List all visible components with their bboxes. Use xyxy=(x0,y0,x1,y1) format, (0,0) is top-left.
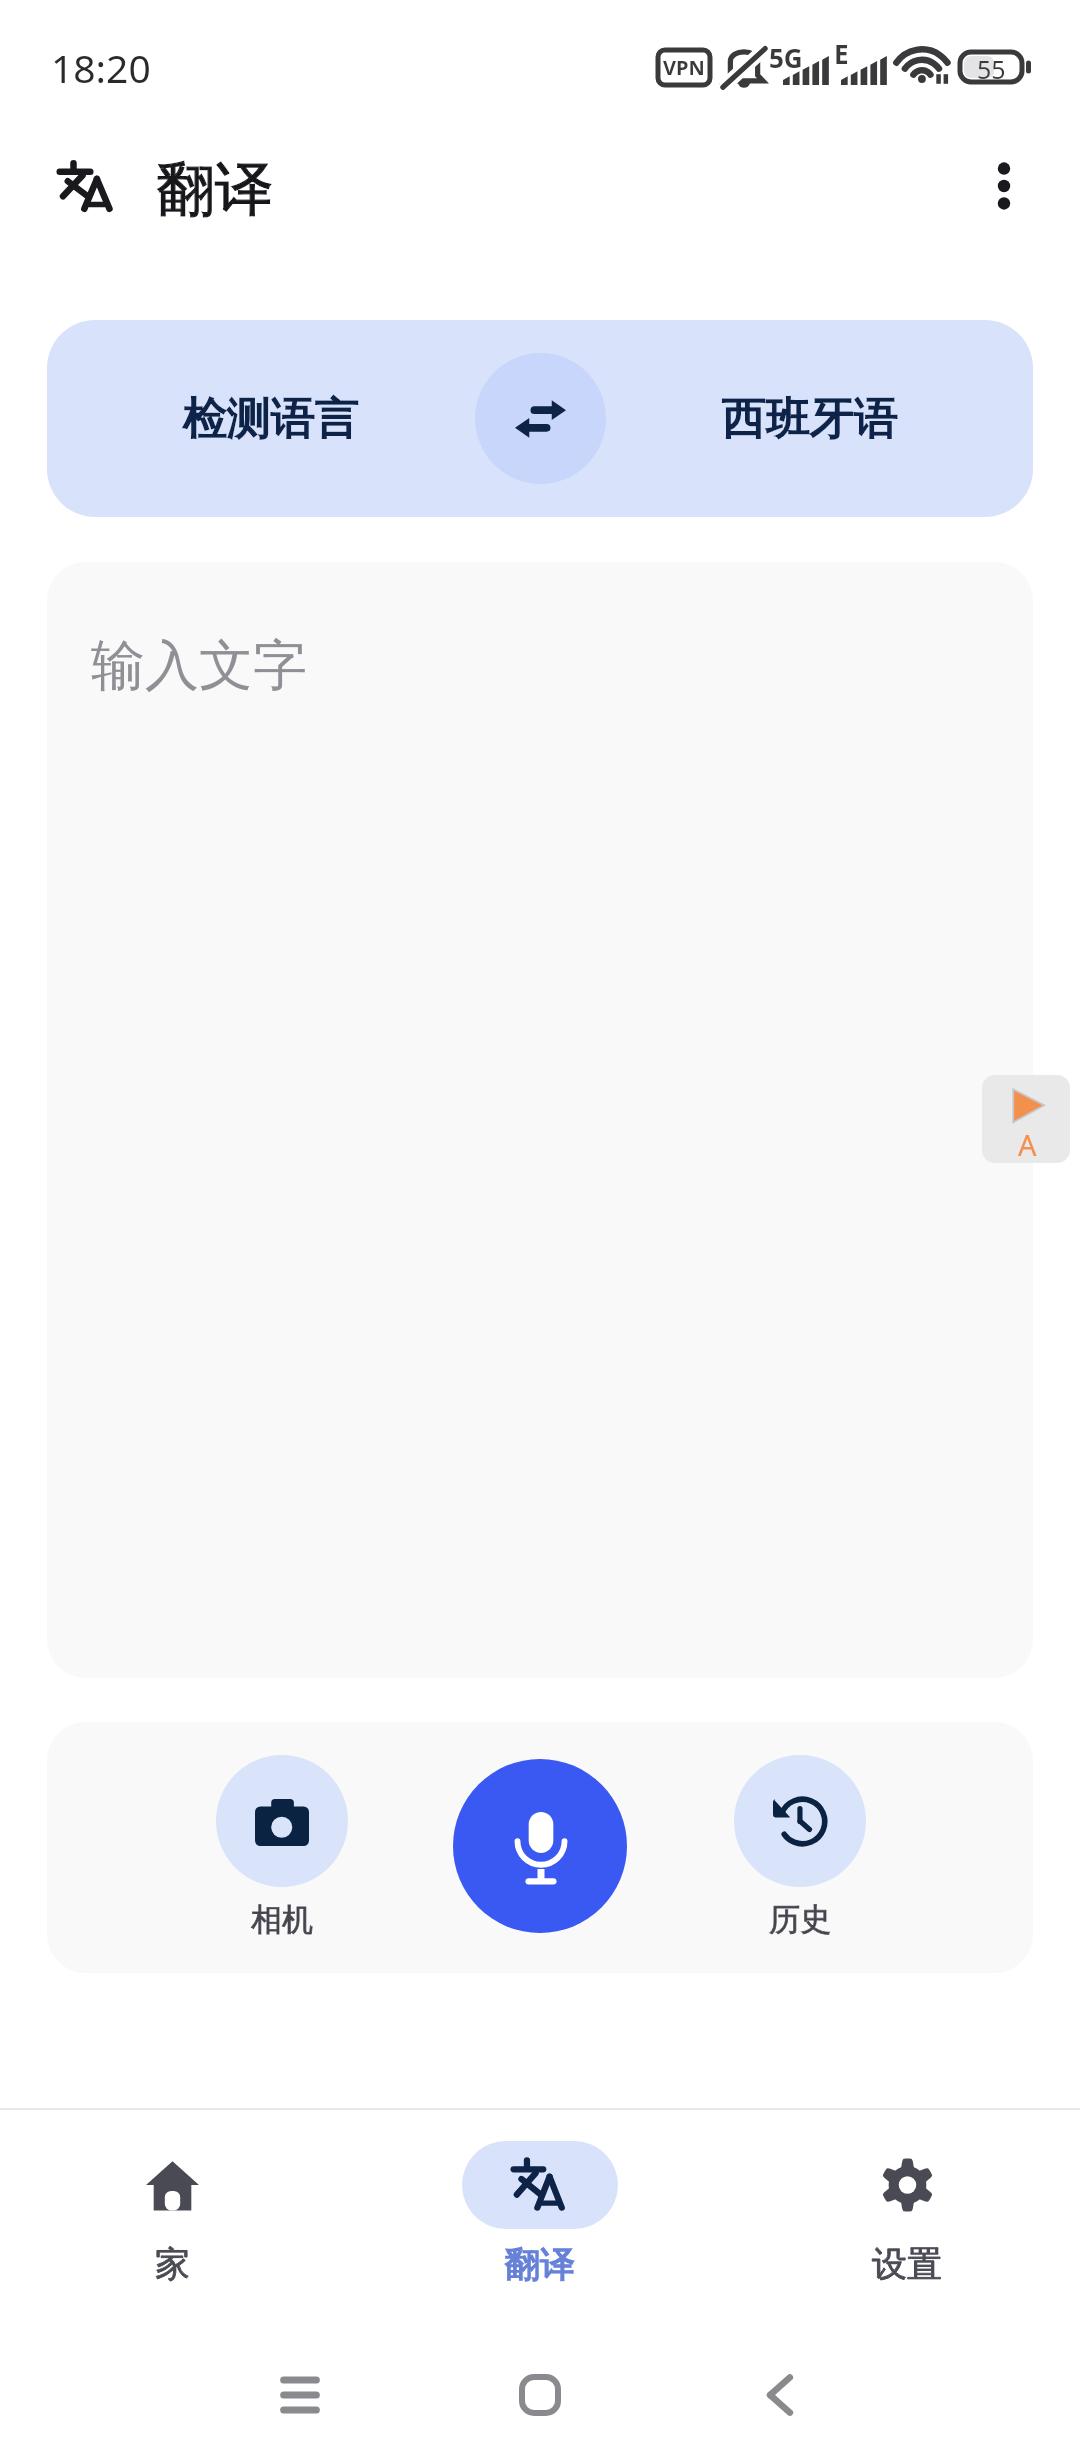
button[interactable]: 历史 xyxy=(712,1749,888,1945)
button[interactable]: 翻译 xyxy=(360,2110,720,2340)
button[interactable]: 相机 xyxy=(194,1749,370,1945)
staticText: 历史 xyxy=(769,1900,831,1939)
button[interactable]: Swap languages xyxy=(475,353,606,484)
staticText: 家 xyxy=(155,2242,190,2286)
staticText: 家 xyxy=(155,2242,190,2286)
staticText: 相机 xyxy=(251,1900,313,1939)
staticText: 西班牙语 xyxy=(722,391,898,446)
staticText: 翻译 xyxy=(505,2242,575,2286)
button[interactable]: 检测语言 xyxy=(47,320,474,517)
staticText: 55 xyxy=(977,52,1006,82)
staticText: 5G xyxy=(769,40,803,75)
staticText: 设置 xyxy=(872,2242,942,2286)
button[interactable]: 设置 xyxy=(720,2110,1080,2340)
staticText: VPN xyxy=(663,54,705,81)
button[interactable]: 西班牙语 xyxy=(606,320,1033,517)
button[interactable]: More options xyxy=(952,134,1056,238)
staticText: 输入文字 xyxy=(91,632,307,700)
staticText: A xyxy=(1018,1125,1037,1163)
button[interactable]: 家 xyxy=(0,2110,360,2340)
staticText: 翻译 xyxy=(157,153,273,226)
button[interactable]: Back xyxy=(720,2340,840,2460)
staticText: 设置 xyxy=(872,2242,942,2286)
button[interactable]: Play translation xyxy=(982,1075,1070,1163)
staticText: 翻译 xyxy=(505,2242,575,2286)
staticText: 相机 xyxy=(251,1900,313,1939)
staticText: 检测语言 xyxy=(183,391,359,446)
staticText: 检测语言 xyxy=(183,391,359,446)
button[interactable]: 输入文字 xyxy=(47,562,1033,1678)
button[interactable]: Recents xyxy=(240,2340,360,2460)
staticText: 历史 xyxy=(769,1900,831,1939)
button[interactable]: Home xyxy=(480,2340,600,2460)
staticText: 翻译 xyxy=(157,153,273,226)
staticText: 西班牙语 xyxy=(722,391,898,446)
button[interactable]: Voice input xyxy=(453,1759,627,1933)
staticText: 18:20 xyxy=(51,41,151,94)
staticText: E xyxy=(834,36,849,71)
